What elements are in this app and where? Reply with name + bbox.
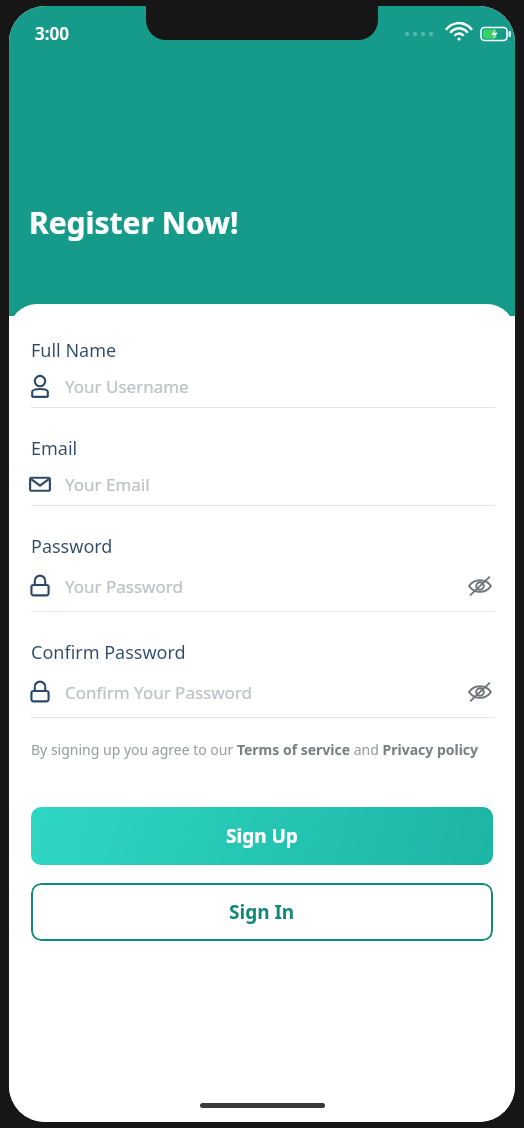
staticText: Sign In <box>229 899 295 925</box>
staticText: Your Password <box>65 575 463 598</box>
button[interactable]: By signing up you agree to our Terms of … <box>31 740 483 759</box>
staticText: Your Username <box>65 375 497 398</box>
staticText: Your Email <box>65 473 497 496</box>
staticText: Password <box>31 534 113 559</box>
staticText: Sign Up <box>226 823 298 849</box>
staticText: Confirm Password <box>31 640 186 665</box>
staticText: 3:00 <box>35 22 69 45</box>
staticText: Email <box>31 436 78 461</box>
button[interactable]: Toggle password visibility <box>463 569 497 603</box>
button[interactable]: Sign In <box>31 883 493 941</box>
button[interactable]: Email <box>27 436 497 506</box>
staticText: Confirm Your Password <box>65 681 463 704</box>
button[interactable]: Full Name <box>27 338 497 408</box>
button[interactable]: Toggle password visibility <box>463 675 497 709</box>
staticText: Register Now! <box>29 202 239 243</box>
button[interactable]: Sign Up <box>31 807 493 865</box>
button[interactable]: Password <box>27 534 497 612</box>
staticText: Full Name <box>31 338 117 363</box>
button[interactable]: Confirm Password <box>27 640 497 718</box>
